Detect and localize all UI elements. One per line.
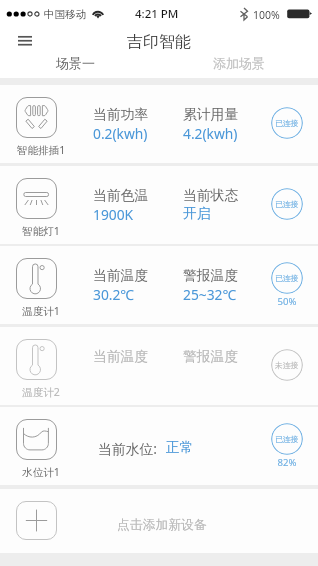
staticText: 开启: [183, 205, 211, 222]
staticText: 警报温度: [183, 348, 239, 365]
staticText: 100%: [253, 8, 280, 22]
staticText: 正常: [166, 439, 194, 456]
staticText: 水位计1: [4, 465, 78, 479]
button[interactable]: 已连接: [271, 262, 303, 294]
staticText: 4.2(kwh): [183, 124, 238, 143]
staticText: 已连接: [275, 199, 299, 209]
button[interactable]: 已连接: [271, 423, 303, 455]
staticText: 当前温度: [93, 267, 149, 284]
button[interactable]: Menu: [11, 27, 39, 55]
staticText: 已连接: [275, 273, 299, 283]
staticText: 已连接: [275, 434, 299, 444]
staticText: 温度计1: [4, 304, 78, 318]
staticText: 点击添加新设备: [117, 517, 207, 533]
staticText: 场景一: [56, 55, 95, 71]
staticText: 当前水位:: [98, 439, 157, 458]
button[interactable]: Add device: [0, 489, 318, 553]
button[interactable]: 已连接: [271, 107, 303, 139]
button[interactable]: 添加场景: [204, 52, 274, 76]
staticText: 当前色温: [93, 187, 149, 204]
staticText: 25~32℃: [183, 285, 237, 304]
staticText: 吉印智能: [127, 32, 191, 52]
staticText: 智能灯1: [4, 224, 78, 238]
staticText: 30.2℃: [93, 285, 135, 304]
staticText: 当前温度: [93, 348, 149, 365]
staticText: 当前状态: [183, 187, 239, 204]
staticText: 4:21 PM: [135, 6, 179, 22]
other: Add device: [16, 501, 57, 540]
staticText: 未连接: [275, 360, 299, 370]
button[interactable]: 未连接: [271, 349, 303, 381]
staticText: 1900K: [93, 205, 134, 224]
staticText: 已连接: [275, 118, 299, 128]
staticText: 当前功率: [93, 106, 149, 123]
staticText: 添加场景: [213, 55, 265, 71]
staticText: 0.2(kwh): [93, 124, 148, 143]
staticText: 智能排插1: [4, 143, 78, 157]
button[interactable]: 温度计2: [0, 327, 318, 405]
button[interactable]: 智能灯1: [0, 166, 318, 244]
staticText: 警报温度: [183, 267, 239, 284]
button[interactable]: 已连接: [271, 188, 303, 220]
staticText: 温度计2: [4, 385, 78, 399]
staticText: 82%: [271, 456, 303, 469]
staticText: 累计用量: [183, 106, 239, 123]
staticText: 50%: [271, 295, 303, 308]
staticText: 中国移动: [44, 8, 86, 21]
button[interactable]: 智能排插1: [0, 85, 318, 163]
button[interactable]: 温度计1: [0, 246, 318, 324]
button[interactable]: 水位计1: [0, 407, 318, 485]
button[interactable]: 场景一: [40, 52, 110, 76]
